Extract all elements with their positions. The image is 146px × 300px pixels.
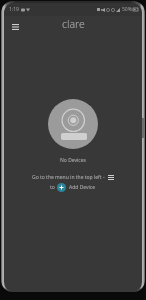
staticText: No Devices bbox=[60, 157, 86, 164]
staticText: clare bbox=[62, 17, 85, 31]
staticText: 50% bbox=[122, 6, 132, 13]
button[interactable]: Add Device bbox=[57, 183, 66, 192]
button[interactable]: Open navigation menu bbox=[8, 20, 22, 34]
staticText: Go to the menu in the top left - bbox=[32, 174, 108, 181]
staticText: Add Device bbox=[69, 184, 96, 191]
staticText: to bbox=[50, 184, 55, 191]
staticText: 1:19 bbox=[9, 6, 19, 13]
